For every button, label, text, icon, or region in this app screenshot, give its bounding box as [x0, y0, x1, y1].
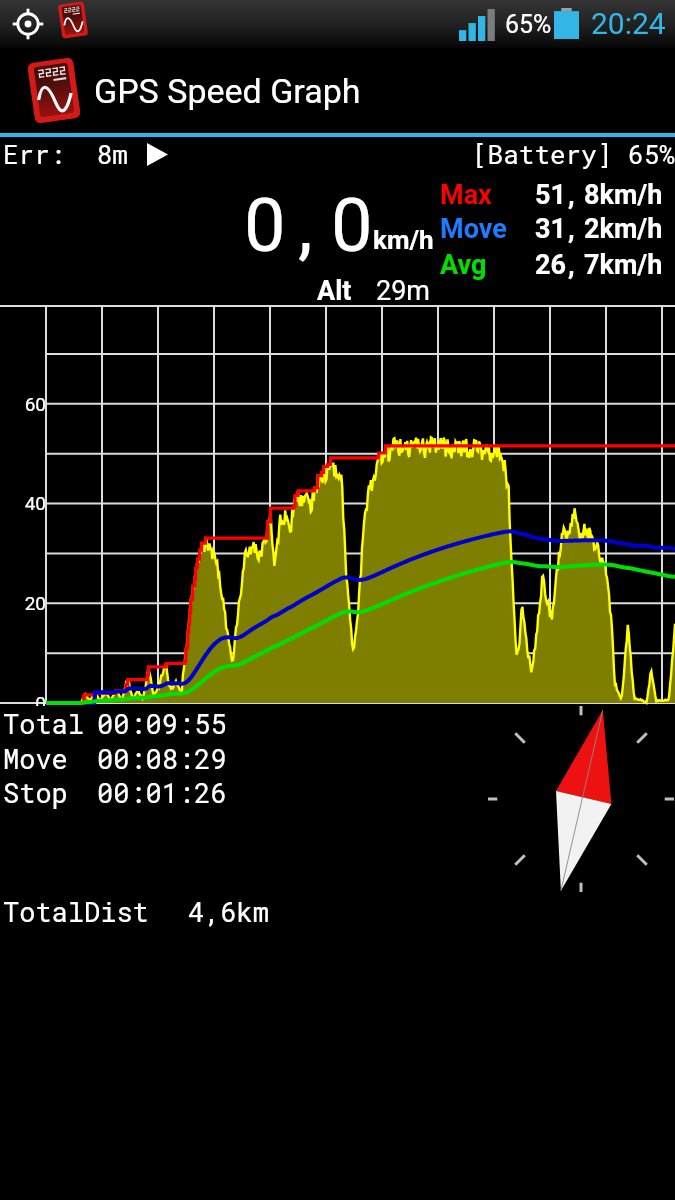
staticText: 20	[0, 592, 46, 614]
staticText: Max	[440, 179, 492, 211]
other: GPS location	[11, 7, 45, 41]
staticText: Move	[440, 213, 507, 245]
staticText: ,	[298, 182, 313, 269]
staticText: 2km/h	[584, 213, 663, 245]
other: Compass	[478, 706, 675, 906]
staticText: 0	[0, 692, 46, 714]
staticText: Avg	[440, 249, 487, 281]
staticText: ,	[568, 179, 575, 211]
staticText: Alt	[317, 275, 352, 307]
staticText: [Battery] 65%	[472, 137, 675, 171]
staticText: 00:09:55	[97, 706, 227, 742]
staticText: 00:08:29	[97, 741, 227, 777]
other: Start	[147, 143, 168, 166]
staticText: Stop	[3, 775, 68, 811]
staticText: 65%	[505, 10, 552, 39]
staticText: ,	[568, 213, 575, 245]
staticText: 26	[535, 249, 566, 281]
button[interactable]: GPS Speed Graph	[0, 48, 675, 133]
staticText: 8km/h	[584, 179, 663, 211]
staticText: Total	[3, 706, 85, 742]
staticText: 29m	[376, 275, 431, 307]
staticText: GPS Speed Graph	[94, 71, 361, 111]
staticText: ,	[568, 249, 575, 281]
staticText: 20:24	[591, 6, 666, 41]
staticText: TotalDist	[3, 894, 149, 930]
staticText: Err: 8m	[3, 137, 128, 171]
staticText: 0	[331, 182, 373, 269]
staticText: km/h	[373, 225, 434, 255]
staticText: Move	[3, 741, 68, 777]
staticText: 00:01:26	[97, 775, 227, 811]
staticText: 51	[535, 179, 566, 211]
staticText: 7km/h	[584, 249, 663, 281]
staticText: 31	[535, 213, 566, 245]
staticText: 4,6km	[188, 894, 270, 930]
staticText: 60	[0, 393, 46, 415]
staticText: 0	[244, 182, 286, 269]
staticText: 40	[0, 492, 46, 514]
